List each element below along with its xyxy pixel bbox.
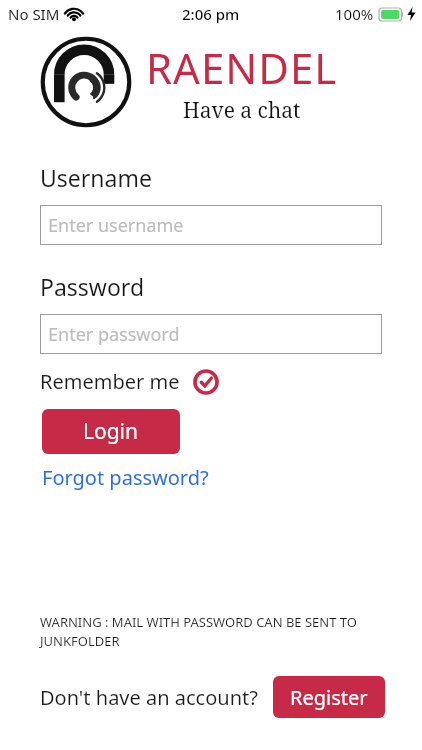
- staticText: Forgot password?: [42, 464, 209, 491]
- button[interactable]: Register: [273, 676, 385, 718]
- staticText: RAENDEL: [146, 39, 338, 96]
- button[interactable]: Enter password: [40, 314, 382, 354]
- staticText: Enter username: [48, 213, 184, 238]
- staticText: WARNING : MAIL WITH PASSWORD CAN BE SENT…: [40, 613, 396, 650]
- staticText: Remember me: [40, 368, 180, 395]
- button[interactable]: Remember me: [40, 368, 218, 395]
- button[interactable]: Login: [42, 409, 180, 454]
- staticText: Don't have an account?: [40, 684, 258, 711]
- staticText: Enter password: [48, 322, 180, 347]
- staticText: 100%: [335, 4, 374, 24]
- button[interactable]: Forgot password?: [42, 460, 209, 495]
- staticText: 2:06 pm: [182, 4, 240, 24]
- other: Remember me checked: [194, 370, 218, 394]
- button[interactable]: Enter username: [40, 205, 382, 245]
- staticText: Register: [290, 684, 368, 711]
- staticText: Login: [83, 417, 139, 446]
- staticText: No SIM: [8, 4, 60, 24]
- staticText: Password: [40, 271, 145, 302]
- staticText: Username: [40, 162, 152, 193]
- staticText: Have a chat: [183, 96, 301, 125]
